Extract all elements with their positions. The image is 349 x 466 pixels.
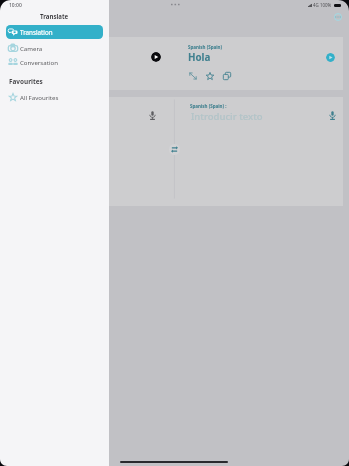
button[interactable]: Copy text [223,72,231,80]
button[interactable]: Speak source language [149,111,156,120]
staticText: All Favourites [20,93,59,101]
button[interactable]: Translation [6,25,103,39]
staticText: 4G [313,2,319,8]
button[interactable]: Speak target language [329,111,336,120]
button[interactable]: Conversation [6,55,103,69]
staticText: Introducir texto [191,110,263,123]
button[interactable]: Camera [6,41,103,55]
button[interactable]: Expand [189,72,197,80]
button[interactable]: Play translation audio [326,53,335,62]
staticText: Favourites [9,77,43,86]
button[interactable]: All Favourites [6,90,103,104]
staticText: Conversation [20,58,58,66]
button[interactable]: Add to favourites [206,72,214,80]
staticText: Spanish (Spain) : [190,103,227,109]
staticText: Translate [40,12,69,20]
staticText: Hola [188,51,211,64]
staticText: Spanish (Spain) [188,44,222,50]
button[interactable]: Play source audio [151,52,161,62]
staticText: 10:00 [9,2,22,9]
staticText: 100% [320,2,332,8]
button[interactable]: More options [334,13,342,21]
staticText: Camera [20,44,43,52]
button[interactable]: Swap languages [169,144,180,155]
staticText: Translation [20,28,53,37]
